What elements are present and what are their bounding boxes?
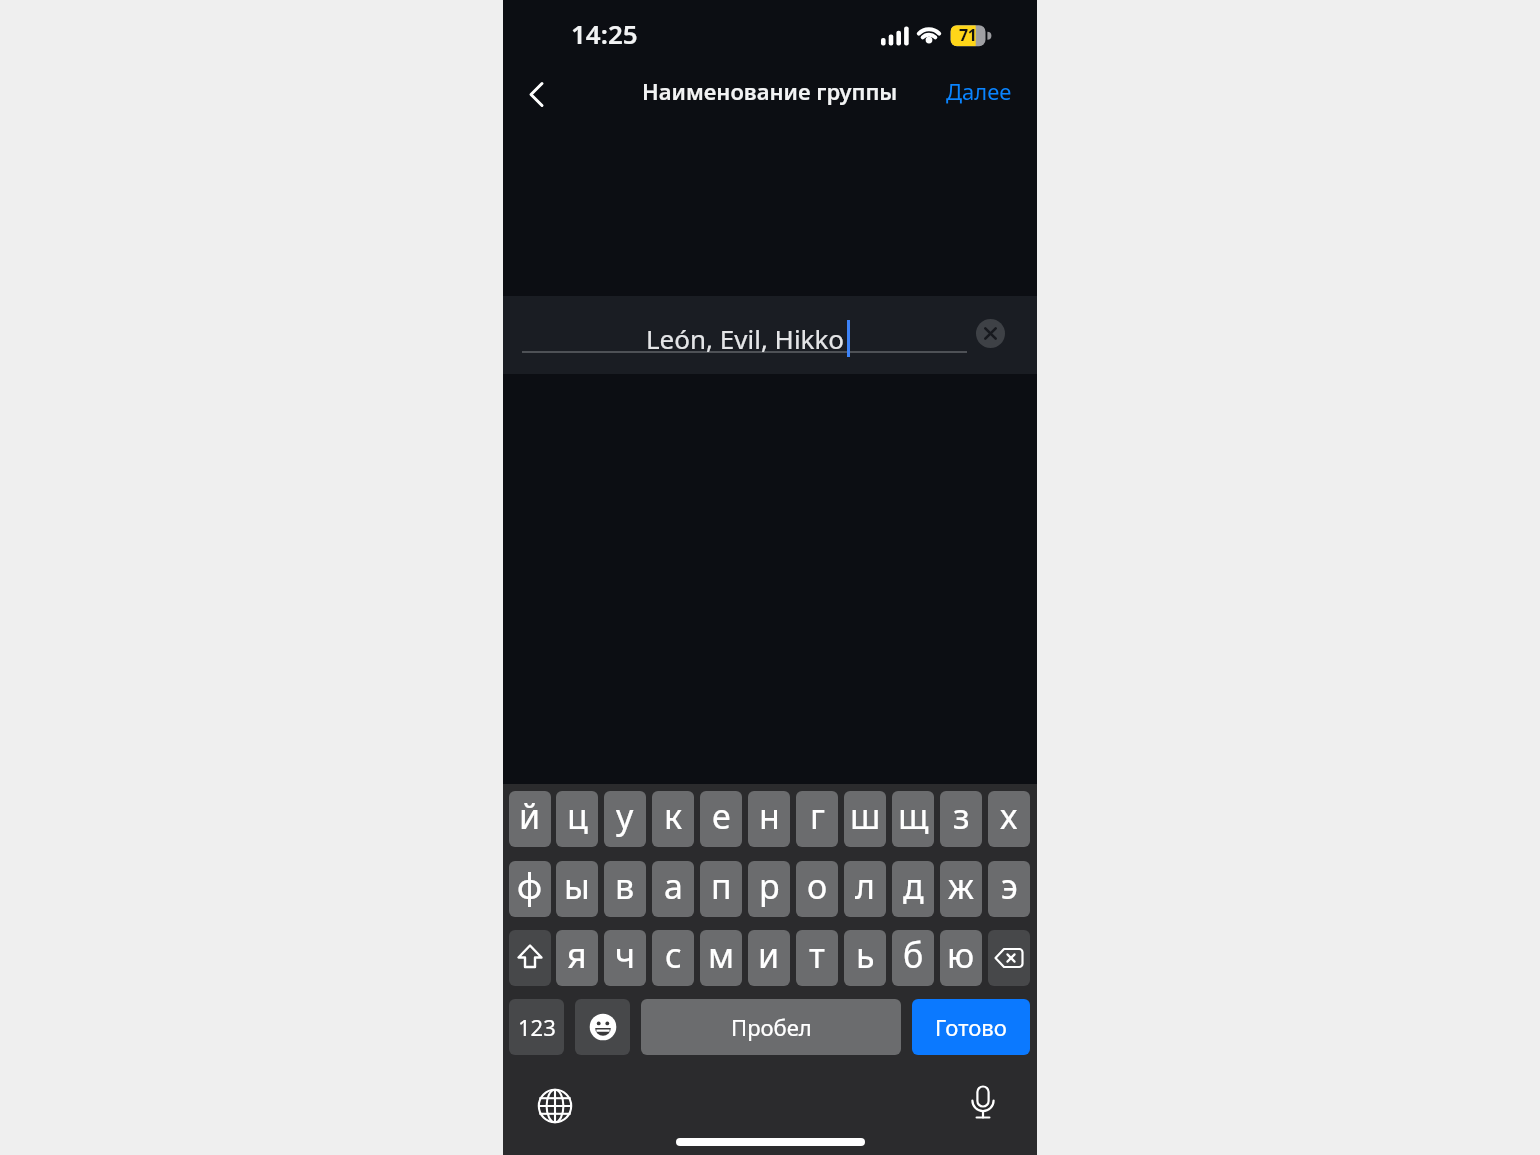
button[interactable]: т xyxy=(796,930,838,986)
button[interactable]: р xyxy=(748,861,790,917)
staticText: с xyxy=(665,932,682,978)
button[interactable]: а xyxy=(652,861,694,917)
staticText: и xyxy=(758,932,780,978)
staticText: п xyxy=(711,863,732,909)
button[interactable]: б xyxy=(892,930,934,986)
staticText: э xyxy=(1001,863,1018,909)
staticText: ш xyxy=(850,793,881,839)
button[interactable]: ц xyxy=(556,791,598,847)
button[interactable]: щ xyxy=(892,791,934,847)
button[interactable]: к xyxy=(652,791,694,847)
button[interactable]: ч xyxy=(604,930,646,986)
button[interactable]: и xyxy=(748,930,790,986)
staticText: León, Evil, Hikko xyxy=(646,321,845,356)
staticText: ь xyxy=(856,932,875,978)
staticText: Пробел xyxy=(731,1012,812,1042)
button[interactable] xyxy=(957,1079,1009,1131)
button[interactable]: Готово xyxy=(912,999,1030,1055)
staticText: л xyxy=(855,863,875,909)
staticText: е xyxy=(712,793,731,839)
button[interactable]: п xyxy=(700,861,742,917)
button[interactable]: э xyxy=(988,861,1030,917)
staticText: у xyxy=(616,793,634,839)
button[interactable]: л xyxy=(844,861,886,917)
staticText: ж xyxy=(948,863,974,909)
staticText: ю xyxy=(947,932,975,978)
staticText: щ xyxy=(898,793,929,839)
button[interactable]: с xyxy=(652,930,694,986)
staticText: о xyxy=(807,863,828,909)
button[interactable]: ю xyxy=(940,930,982,986)
staticText: Наименование группы xyxy=(642,76,898,106)
button[interactable]: у xyxy=(604,791,646,847)
staticText: Готово xyxy=(935,1012,1007,1042)
button[interactable]: ь xyxy=(844,930,886,986)
staticText: т xyxy=(809,932,825,978)
button[interactable]: ы xyxy=(556,861,598,917)
staticText: г xyxy=(810,793,825,839)
button[interactable]: ж xyxy=(940,861,982,917)
staticText: я xyxy=(567,932,587,978)
button[interactable] xyxy=(575,999,630,1055)
button[interactable]: х xyxy=(988,791,1030,847)
staticText: х xyxy=(1000,793,1018,839)
staticText: ц xyxy=(567,793,588,839)
button[interactable]: з xyxy=(940,791,982,847)
staticText: к xyxy=(664,793,683,839)
button[interactable]: о xyxy=(796,861,838,917)
button[interactable]: м xyxy=(700,930,742,986)
button[interactable]: г xyxy=(796,791,838,847)
staticText: ф xyxy=(517,863,543,909)
staticText: д xyxy=(903,863,924,909)
button[interactable]: ф xyxy=(509,861,551,917)
button[interactable]: Далее xyxy=(933,69,1025,113)
staticText: ч xyxy=(615,932,636,978)
button[interactable] xyxy=(988,930,1030,986)
button[interactable] xyxy=(976,319,1005,348)
button[interactable]: е xyxy=(700,791,742,847)
staticText: 123 xyxy=(518,1012,556,1042)
staticText: в xyxy=(615,863,635,909)
staticText: а xyxy=(664,863,683,909)
button[interactable]: й xyxy=(509,791,551,847)
button[interactable]: 123 xyxy=(509,999,564,1055)
button[interactable]: д xyxy=(892,861,934,917)
staticText: Далее xyxy=(946,76,1012,106)
staticText: 71 xyxy=(959,24,977,46)
button[interactable]: н xyxy=(748,791,790,847)
button[interactable]: ш xyxy=(844,791,886,847)
button[interactable]: я xyxy=(556,930,598,986)
button[interactable] xyxy=(529,1080,581,1132)
button[interactable] xyxy=(509,930,551,986)
button[interactable]: в xyxy=(604,861,646,917)
staticText: й xyxy=(519,793,541,839)
staticText: р xyxy=(759,863,780,909)
staticText: м xyxy=(708,932,735,978)
staticText: ы xyxy=(564,863,590,909)
staticText: 14:25 xyxy=(571,16,638,51)
staticText: з xyxy=(953,793,970,839)
button[interactable]: Пробел xyxy=(641,999,901,1055)
staticText: б xyxy=(903,932,924,978)
staticText: н xyxy=(759,793,780,839)
button[interactable] xyxy=(515,70,559,118)
